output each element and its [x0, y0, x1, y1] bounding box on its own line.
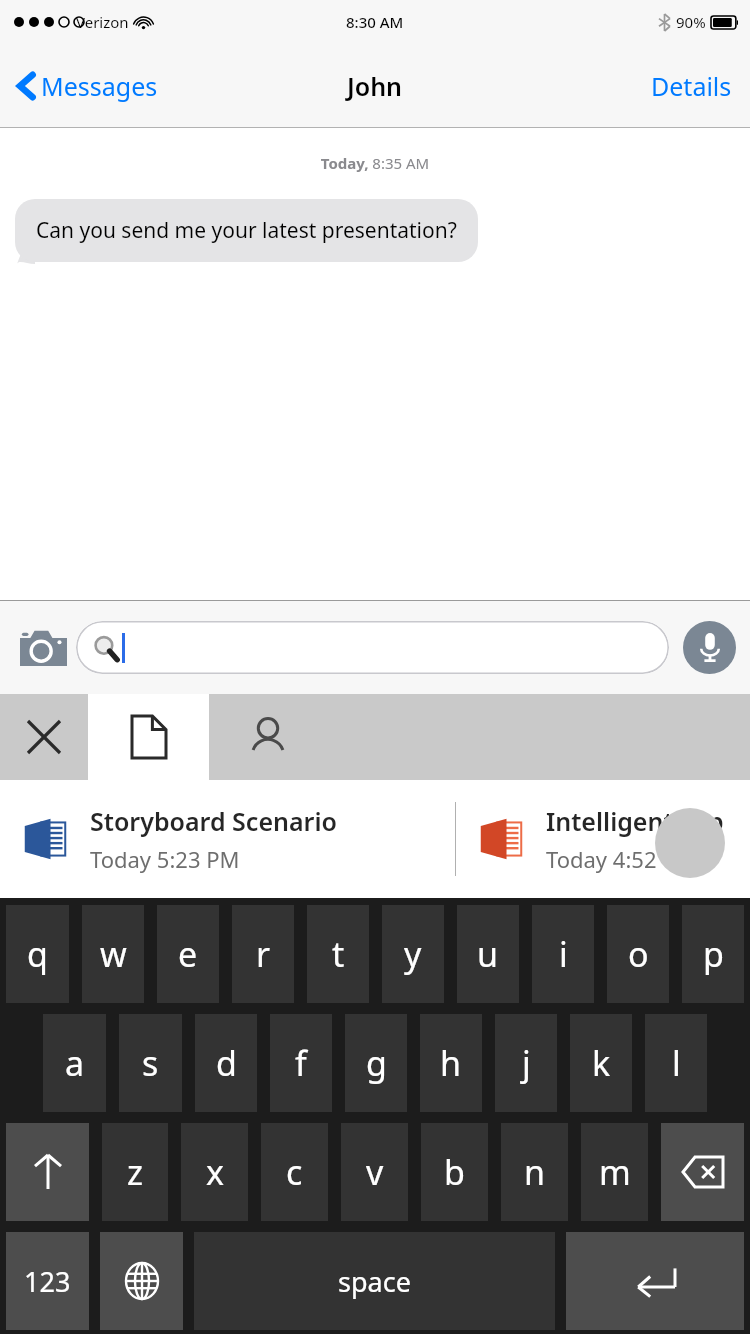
staticText: w: [100, 931, 127, 977]
button[interactable]: Details: [645, 63, 738, 109]
button[interactable]: k: [570, 1014, 632, 1112]
staticText: b: [444, 1149, 465, 1195]
button[interactable]: People: [209, 694, 327, 780]
staticText: g: [366, 1040, 387, 1086]
button[interactable]: g: [345, 1014, 407, 1112]
button[interactable]: e: [157, 905, 219, 1003]
button[interactable]: s: [119, 1014, 182, 1112]
button[interactable]: p: [682, 905, 744, 1003]
staticText: Today, 8:35 AM: [0, 153, 750, 173]
staticText: Details: [651, 69, 732, 103]
button[interactable]: f: [270, 1014, 332, 1112]
button[interactable]: [76, 621, 669, 674]
staticText: d: [216, 1040, 237, 1086]
button[interactable]: Shift: [6, 1123, 89, 1221]
staticText: u: [477, 931, 499, 977]
staticText: i: [559, 931, 568, 977]
staticText: r: [256, 931, 271, 977]
button[interactable]: x: [181, 1123, 248, 1221]
staticText: h: [440, 1040, 462, 1086]
staticText: c: [286, 1149, 303, 1195]
staticText: Verizon: [76, 12, 129, 32]
staticText: y: [404, 931, 422, 977]
button[interactable]: h: [420, 1014, 482, 1112]
staticText: p: [703, 931, 724, 977]
staticText: x: [206, 1149, 224, 1195]
staticText: o: [628, 931, 649, 977]
button[interactable]: w: [82, 905, 144, 1003]
button[interactable]: u: [457, 905, 519, 1003]
button[interactable]: Camera: [14, 618, 72, 676]
button[interactable]: Enter: [566, 1232, 744, 1330]
staticText: Today 4:52: [546, 844, 657, 874]
staticText: John: [347, 69, 403, 103]
staticText: Messages: [41, 69, 158, 103]
staticText: l: [672, 1040, 681, 1086]
button[interactable]: q: [6, 905, 69, 1003]
staticText: f: [295, 1040, 307, 1086]
button[interactable]: o: [607, 905, 669, 1003]
staticText: s: [142, 1040, 159, 1086]
button[interactable]: a: [43, 1014, 106, 1112]
button[interactable]: c: [261, 1123, 328, 1221]
button[interactable]: j: [495, 1014, 557, 1112]
staticText: j: [522, 1040, 531, 1086]
staticText: 123: [24, 1263, 71, 1300]
button[interactable]: n: [501, 1123, 568, 1221]
button[interactable]: l: [645, 1014, 707, 1112]
button[interactable]: y: [382, 905, 444, 1003]
button[interactable]: Can you send me your latest presentation…: [15, 199, 478, 262]
staticText: e: [178, 931, 198, 977]
button[interactable]: Dictate: [683, 621, 736, 674]
button[interactable]: Change keyboard: [100, 1232, 183, 1330]
button[interactable]: Backspace: [661, 1123, 744, 1221]
staticText: k: [592, 1040, 611, 1086]
staticText: v: [366, 1149, 384, 1195]
staticText: m: [599, 1149, 631, 1195]
button[interactable]: space: [194, 1232, 555, 1330]
button[interactable]: r: [232, 905, 294, 1003]
button[interactable]: b: [421, 1123, 488, 1221]
button[interactable]: v: [341, 1123, 408, 1221]
button[interactable]: d: [195, 1014, 257, 1112]
button[interactable]: Documents: [88, 694, 209, 780]
staticText: Intelligent Exp: [546, 804, 724, 838]
staticText: z: [127, 1149, 143, 1195]
staticText: 90%: [676, 12, 706, 32]
staticText: a: [65, 1040, 85, 1086]
staticText: t: [332, 931, 345, 977]
staticText: n: [524, 1149, 546, 1195]
button[interactable]: Intelligent Exp: [456, 780, 750, 898]
staticText: q: [27, 931, 48, 977]
button[interactable]: 123: [6, 1232, 89, 1330]
button[interactable]: t: [307, 905, 369, 1003]
staticText: Storyboard Scenario: [90, 804, 337, 838]
button[interactable]: Storyboard Scenario: [0, 780, 455, 898]
staticText: space: [338, 1263, 411, 1300]
staticText: 8:30 AM: [346, 12, 404, 32]
button[interactable]: Close: [0, 694, 88, 780]
button[interactable]: z: [102, 1123, 168, 1221]
button[interactable]: m: [581, 1123, 648, 1221]
button[interactable]: i: [532, 905, 594, 1003]
staticText: Can you send me your latest presentation…: [36, 216, 457, 245]
button[interactable]: Messages: [12, 63, 164, 109]
staticText: Today 5:23 PM: [90, 844, 240, 874]
